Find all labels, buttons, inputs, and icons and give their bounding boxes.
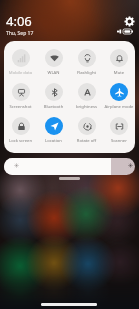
staticText: WLAN [37, 70, 70, 76]
staticText: Mute [103, 70, 135, 76]
staticText: Bluetooth [37, 104, 70, 110]
staticText: 4:06 [6, 12, 32, 30]
staticText: Screenshot [4, 104, 37, 110]
staticText: Rotate off [70, 138, 103, 144]
button[interactable]: Rotate off [70, 111, 103, 145]
button[interactable]: Airplane mode [103, 77, 135, 111]
button[interactable]: Settings [124, 16, 135, 27]
staticText: Scanner [103, 138, 135, 144]
staticText: Mobile data [4, 70, 37, 76]
button[interactable]: Brightness [4, 158, 135, 175]
button[interactable]: Mute [103, 43, 135, 77]
button[interactable]: Drag handle [59, 177, 80, 180]
staticText: Location [37, 138, 70, 144]
button[interactable]: Location [37, 111, 70, 145]
button[interactable]: Screenshot [4, 77, 37, 111]
button[interactable]: WLAN [37, 43, 70, 77]
button[interactable]: brightness [70, 77, 103, 111]
button[interactable]: Bluetooth [37, 77, 70, 111]
button[interactable]: Flashlight [70, 43, 103, 77]
staticText: Thu, Sep 17 [6, 30, 34, 37]
staticText: Airplane mode [103, 104, 135, 110]
staticText: brightness [70, 104, 103, 110]
button[interactable]: Lock screen [4, 111, 37, 145]
staticText: Flashlight [70, 70, 103, 76]
staticText: Lock screen [4, 138, 37, 144]
button[interactable]: Scanner [103, 111, 135, 145]
button[interactable]: Mobile data [4, 43, 37, 77]
